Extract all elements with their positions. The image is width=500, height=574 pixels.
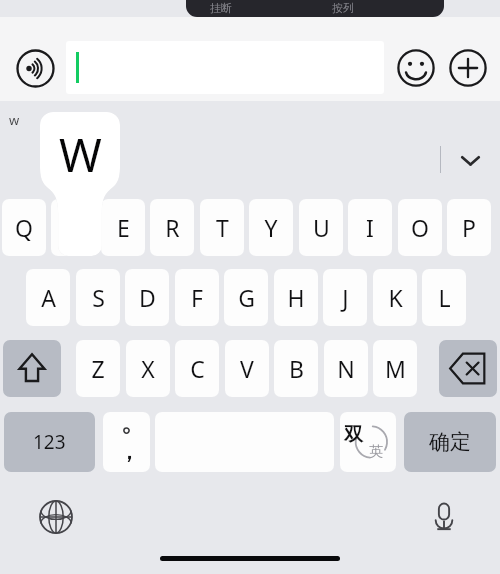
- button[interactable]: Change keyboard: [33, 494, 79, 540]
- button[interactable]: V: [225, 340, 269, 397]
- staticText: T: [216, 212, 229, 243]
- staticText: B: [289, 353, 304, 384]
- staticText: R: [165, 212, 180, 243]
- staticText: J: [342, 282, 349, 313]
- staticText: 英: [369, 443, 383, 461]
- staticText: O: [411, 212, 429, 243]
- button[interactable]: A: [26, 269, 70, 326]
- button[interactable]: Shift: [3, 340, 61, 397]
- button[interactable]: G: [224, 269, 268, 326]
- staticText: E: [117, 212, 130, 243]
- staticText: Q: [15, 212, 33, 243]
- button[interactable]: N: [324, 340, 368, 397]
- staticText: X: [141, 353, 155, 384]
- button[interactable]: Backspace: [439, 340, 497, 397]
- button[interactable]: Hide keyboard: [450, 140, 490, 180]
- staticText: N: [337, 353, 355, 384]
- staticText: P: [462, 212, 476, 243]
- staticText: H: [287, 282, 305, 313]
- button[interactable]: Y: [249, 199, 293, 256]
- button[interactable]: M: [373, 340, 417, 397]
- button[interactable]: Voice message: [12, 45, 58, 91]
- staticText: L: [438, 282, 451, 313]
- button[interactable]: 123: [4, 412, 95, 472]
- staticText: U: [313, 212, 330, 243]
- button[interactable]: Switch Chinese English: [340, 412, 396, 472]
- button[interactable]: S: [76, 269, 120, 326]
- button[interactable]: Message input: [66, 41, 384, 94]
- button[interactable]: O: [398, 199, 442, 256]
- button[interactable]: I: [348, 199, 392, 256]
- staticText: V: [240, 353, 254, 384]
- button[interactable]: F: [175, 269, 219, 326]
- button[interactable]: J: [323, 269, 367, 326]
- staticText: I: [366, 212, 374, 243]
- button[interactable]: B: [274, 340, 318, 397]
- button[interactable]: P: [447, 199, 491, 256]
- staticText: 确定: [429, 429, 471, 455]
- button[interactable]: E: [101, 199, 145, 256]
- staticText: Y: [264, 212, 278, 243]
- button[interactable]: More options: [446, 46, 490, 90]
- staticText: S: [92, 282, 105, 313]
- staticText: K: [388, 282, 403, 313]
- button[interactable]: X: [126, 340, 170, 397]
- button[interactable]: Z: [76, 340, 120, 397]
- button[interactable]: R: [150, 199, 194, 256]
- staticText: 123: [33, 429, 66, 455]
- staticText: ，: [119, 440, 139, 465]
- button[interactable]: W: [40, 112, 120, 256]
- button[interactable]: T: [200, 199, 244, 256]
- staticText: M: [385, 353, 406, 384]
- staticText: F: [191, 282, 203, 313]
- staticText: G: [238, 282, 255, 313]
- staticText: 按列: [332, 1, 354, 15]
- button[interactable]: U: [299, 199, 343, 256]
- staticText: A: [41, 282, 56, 313]
- button[interactable]: Call banner: [186, 0, 444, 17]
- button[interactable]: 确定: [404, 412, 496, 472]
- staticText: C: [190, 353, 205, 384]
- button[interactable]: H: [274, 269, 318, 326]
- staticText: 双: [344, 423, 363, 447]
- staticText: w: [9, 111, 20, 129]
- button[interactable]: C: [175, 340, 219, 397]
- button[interactable]: D: [125, 269, 169, 326]
- staticText: Z: [91, 353, 105, 384]
- staticText: 挂断: [210, 1, 232, 15]
- button[interactable]: K: [373, 269, 417, 326]
- button[interactable]: Punctuation: [103, 412, 150, 472]
- staticText: W: [59, 123, 102, 186]
- button[interactable]: Q: [2, 199, 46, 256]
- staticText: D: [139, 282, 156, 313]
- button[interactable]: L: [422, 269, 466, 326]
- button[interactable]: Voice dictation: [421, 494, 467, 540]
- button[interactable]: Emoji: [394, 46, 438, 90]
